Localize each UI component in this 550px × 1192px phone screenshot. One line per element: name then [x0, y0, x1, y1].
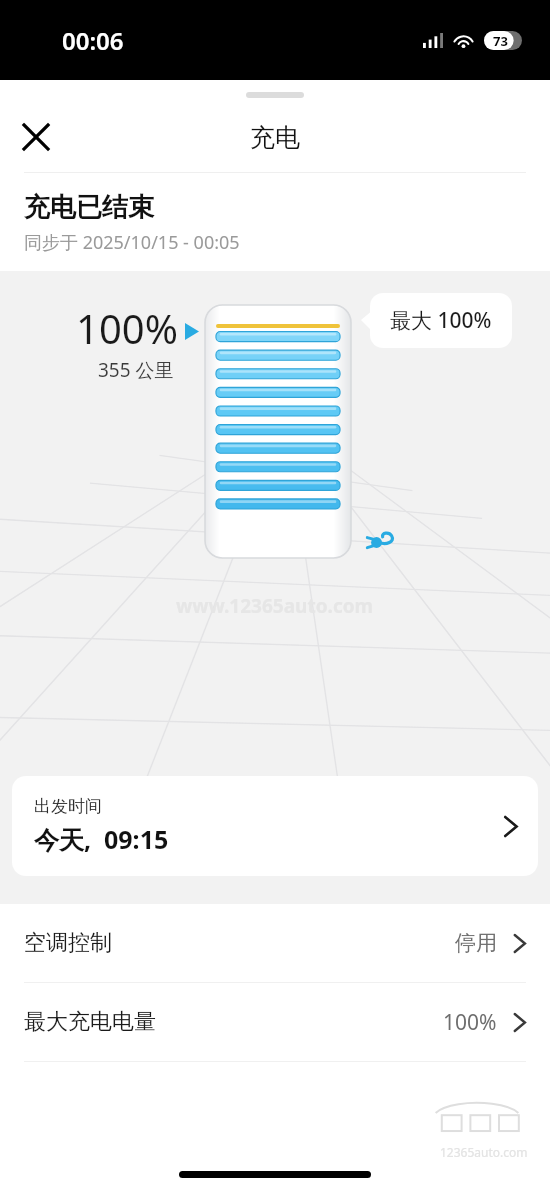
button[interactable]: Close [8, 109, 64, 165]
staticText: 12365auto.com [440, 1144, 528, 1160]
button[interactable]: 空调控制 [0, 904, 550, 982]
staticText: 00:06 [62, 24, 124, 57]
staticText: 充电已结束 [24, 191, 154, 224]
staticText: 停用 [455, 930, 497, 956]
staticText: 空调控制 [24, 929, 455, 957]
staticText: 今天, [34, 822, 92, 856]
staticText: 最大 100% [390, 306, 492, 335]
staticText: 100% [76, 301, 178, 355]
staticText: 09:15 [104, 822, 169, 856]
staticText: 同步于 2025/10/15 - 00:05 [24, 230, 240, 255]
button[interactable]: 最大充电电量 [0, 983, 550, 1061]
staticText: 最大充电电量 [24, 1008, 443, 1036]
staticText: 充电 [250, 122, 300, 153]
button[interactable]: 出发时间 [12, 776, 538, 876]
staticText: 73 [493, 32, 508, 50]
staticText: 100% [443, 1008, 497, 1037]
staticText: 355 公里 [98, 357, 174, 383]
staticText: www.12365auto.com [176, 593, 374, 619]
staticText: 出发时间 [34, 796, 102, 817]
